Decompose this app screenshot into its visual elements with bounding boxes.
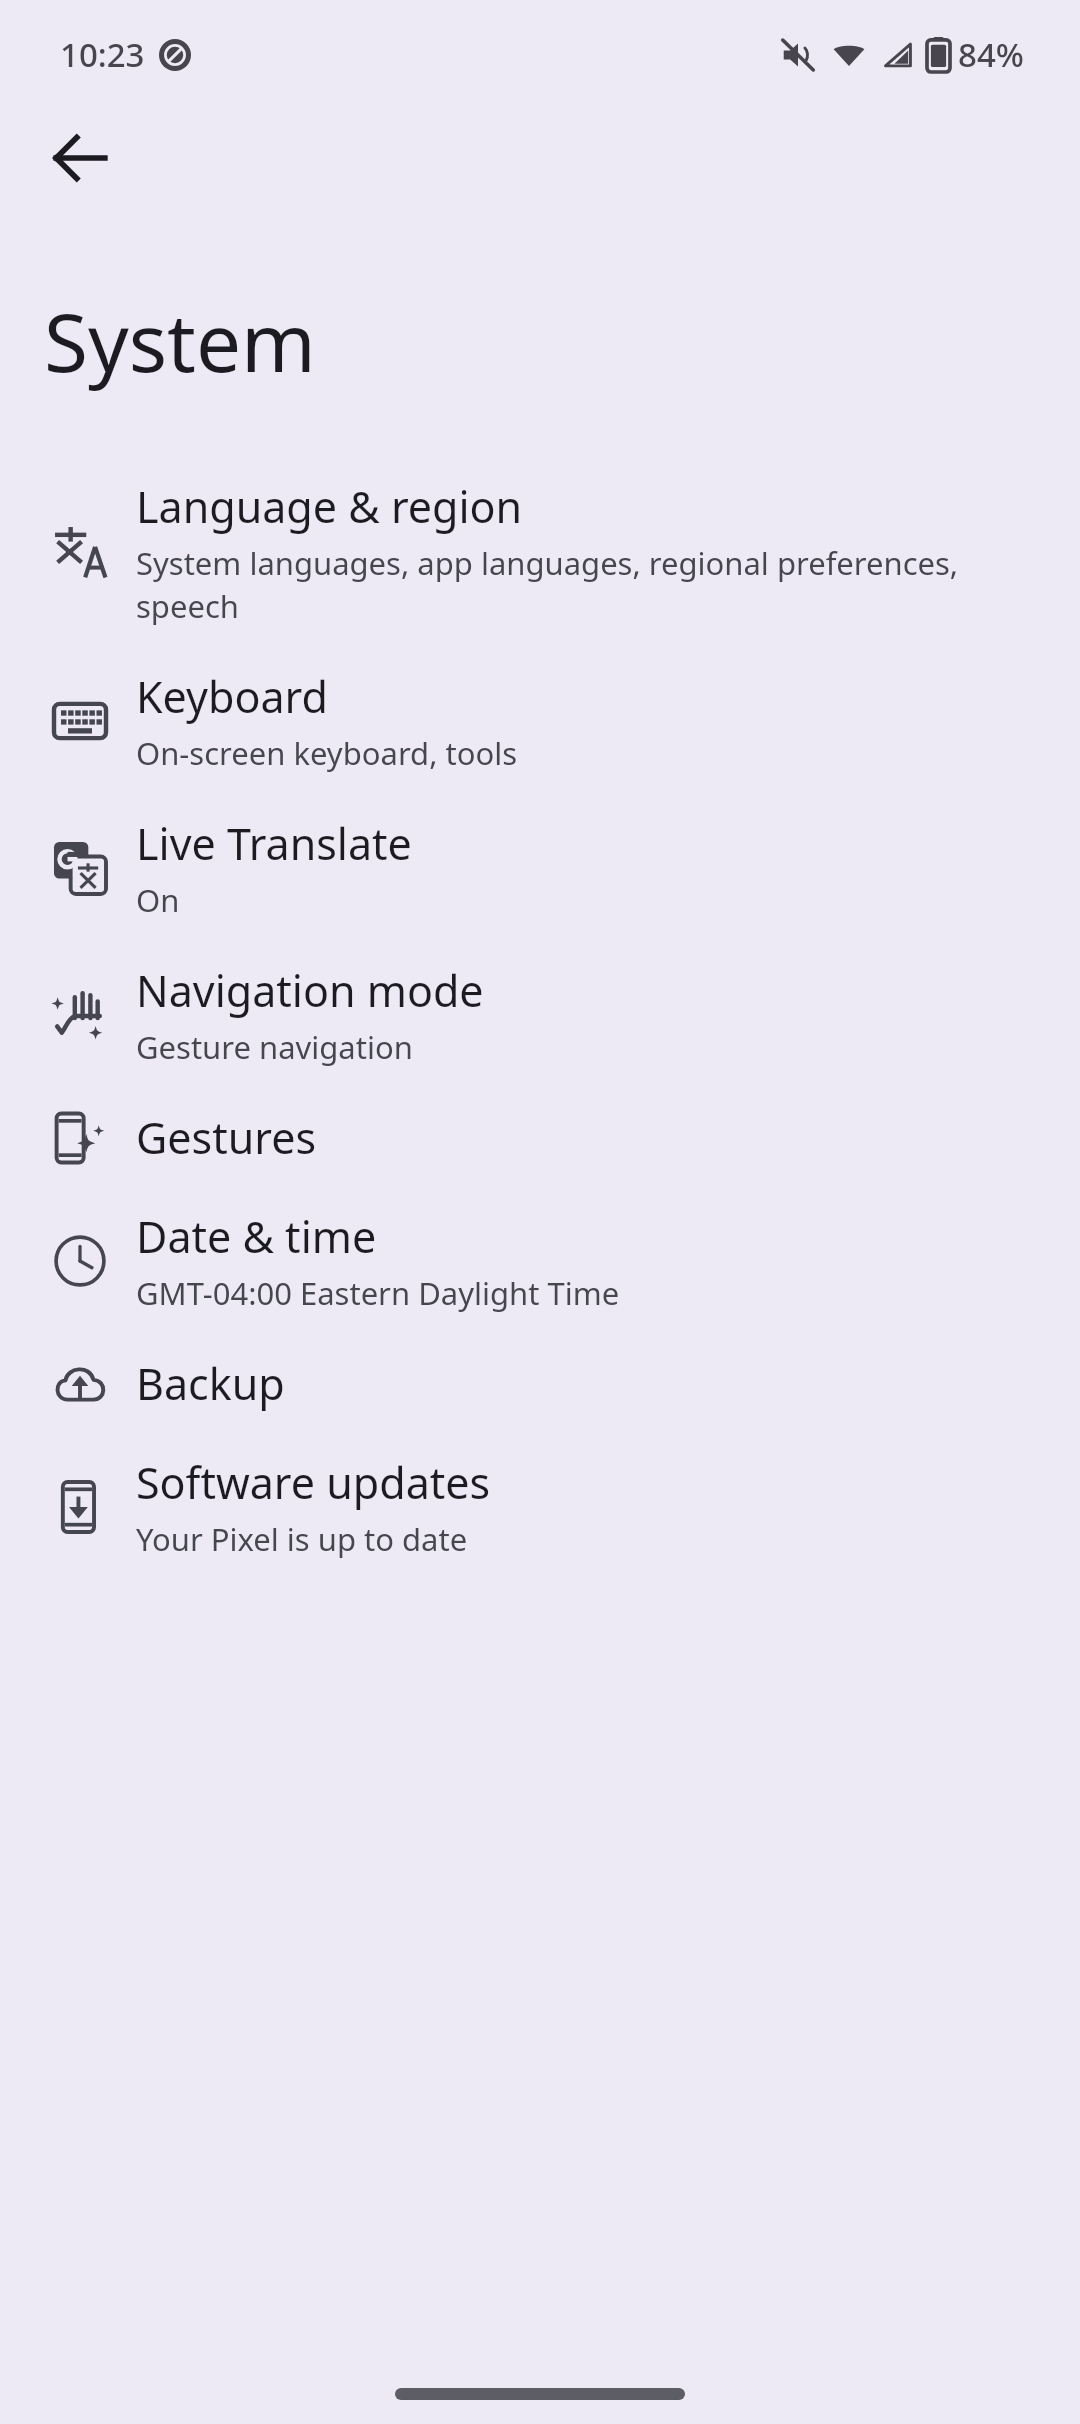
button[interactable]: Backup bbox=[0, 1334, 1080, 1433]
staticText: Software updates bbox=[136, 1453, 491, 1512]
other: Keyboard bbox=[54, 695, 106, 747]
staticText: System bbox=[44, 286, 316, 395]
button[interactable]: Software updates bbox=[0, 1433, 1080, 1580]
button[interactable]: Navigation mode bbox=[0, 941, 1080, 1088]
button[interactable]: Date and time bbox=[0, 1187, 1080, 1334]
staticText: System languages, app languages, regiona… bbox=[136, 542, 1034, 627]
staticText: Backup bbox=[136, 1354, 285, 1413]
staticText: Language & region bbox=[136, 477, 523, 536]
other: Language and region bbox=[54, 526, 106, 578]
other: Backup bbox=[54, 1358, 106, 1410]
button[interactable]: Gestures bbox=[0, 1088, 1080, 1187]
staticText: Keyboard bbox=[136, 667, 328, 726]
button[interactable]: Language and region bbox=[0, 457, 1080, 647]
staticText: 10:23 bbox=[60, 32, 145, 77]
staticText: Live Translate bbox=[136, 814, 412, 873]
staticText: Your Pixel is up to date bbox=[136, 1518, 468, 1560]
staticText: On-screen keyboard, tools bbox=[136, 732, 518, 774]
button[interactable]: Back bbox=[30, 108, 130, 208]
button[interactable]: Live Translate bbox=[0, 794, 1080, 941]
other: Navigation mode bbox=[54, 989, 106, 1041]
staticText: 84% bbox=[958, 32, 1024, 77]
other: Live Translate bbox=[54, 842, 106, 894]
staticText: Gesture navigation bbox=[136, 1026, 413, 1068]
staticText: Date & time bbox=[136, 1207, 377, 1266]
other: Gestures bbox=[54, 1112, 106, 1164]
button[interactable]: Keyboard bbox=[0, 647, 1080, 794]
staticText: Gestures bbox=[136, 1108, 316, 1167]
staticText: GMT-04:00 Eastern Daylight Time bbox=[136, 1272, 620, 1314]
other: Software updates bbox=[54, 1481, 106, 1533]
staticText: On bbox=[136, 879, 180, 921]
other: Date and time bbox=[54, 1235, 106, 1287]
staticText: Navigation mode bbox=[136, 961, 484, 1020]
